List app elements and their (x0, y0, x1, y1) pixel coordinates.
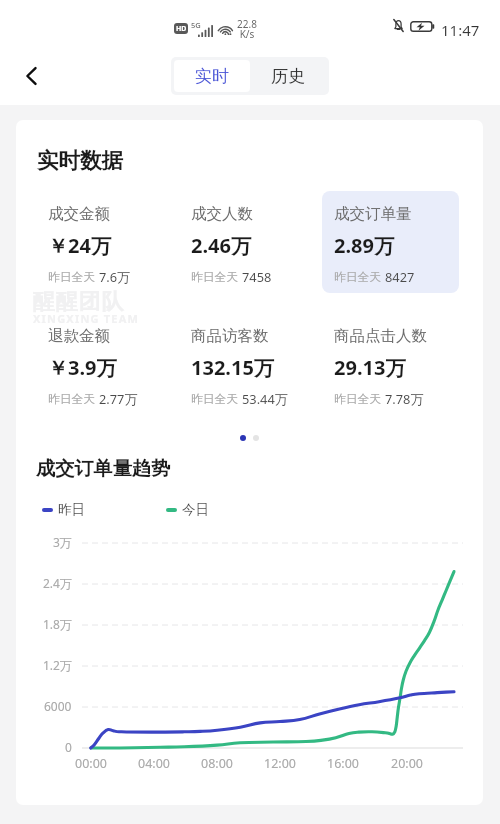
staticText: 8427 (385, 268, 415, 285)
staticText: 成交订单量趋势 (36, 457, 171, 481)
button[interactable]: Back (13, 57, 51, 95)
staticText: 昨日全天 (191, 392, 239, 407)
staticText: 7.78万 (385, 390, 424, 407)
staticText: 2.77万 (99, 390, 138, 407)
staticText: 08:00 (201, 755, 233, 772)
button[interactable] (179, 313, 316, 415)
staticText: 29.13万 (334, 354, 406, 381)
staticText: 2.46万 (191, 232, 251, 259)
staticText: 实时数据 (37, 147, 123, 174)
staticText: 实时 (195, 66, 229, 87)
button[interactable] (179, 191, 316, 293)
staticText: 商品访客数 (191, 326, 269, 346)
staticText: 04:00 (138, 755, 170, 772)
button[interactable] (322, 313, 459, 415)
button[interactable] (36, 191, 173, 293)
staticText: 历史 (271, 66, 305, 87)
staticText: 1.8万 (43, 616, 72, 632)
staticText: 昨日全天 (334, 392, 382, 407)
staticText: 3万 (53, 534, 72, 550)
staticText: 5G (191, 20, 201, 30)
staticText: 昨日全天 (191, 270, 239, 285)
staticText: 2.4万 (43, 575, 72, 591)
staticText: 22.8 K/s (237, 17, 257, 41)
staticText: 昨日全天 (48, 270, 96, 285)
staticText: 昨日全天 (334, 270, 382, 285)
staticText: HD (176, 24, 187, 34)
staticText: 成交金额 (48, 204, 110, 224)
other: Battery charging (410, 20, 435, 33)
staticText: 20:00 (391, 755, 423, 772)
staticText: 132.15万 (191, 354, 274, 381)
staticText: 00:00 (75, 755, 107, 772)
button[interactable]: 实时 (174, 60, 250, 92)
staticText: 0 (65, 739, 72, 755)
staticText: 退款金额 (48, 326, 110, 346)
staticText: 6000 (44, 698, 72, 714)
staticText: 成交订单量 (334, 204, 412, 224)
button[interactable] (322, 191, 459, 293)
staticText: ￥3.9万 (48, 354, 117, 381)
staticText: 12:00 (264, 755, 296, 772)
staticText: 昨日全天 (48, 392, 96, 407)
staticText: 16:00 (327, 755, 359, 772)
staticText: 11:47 (441, 20, 480, 40)
button[interactable]: 历史 (250, 60, 326, 92)
staticText: 2.89万 (334, 232, 394, 259)
staticText: 昨日 (58, 501, 85, 518)
staticText: 7458 (242, 268, 272, 285)
staticText: 今日 (182, 501, 209, 518)
staticText: 1.2万 (43, 657, 72, 673)
button[interactable] (36, 313, 173, 415)
staticText: 商品点击人数 (334, 326, 427, 346)
staticText: 53.44万 (242, 390, 288, 407)
other: Silent mode (392, 18, 405, 33)
staticText: 醒醒团队 (32, 288, 124, 316)
staticText: 7.6万 (99, 268, 130, 285)
staticText: ￥24万 (48, 232, 111, 259)
staticText: XINGXING TEAM (33, 311, 140, 326)
staticText: 成交人数 (191, 204, 253, 224)
